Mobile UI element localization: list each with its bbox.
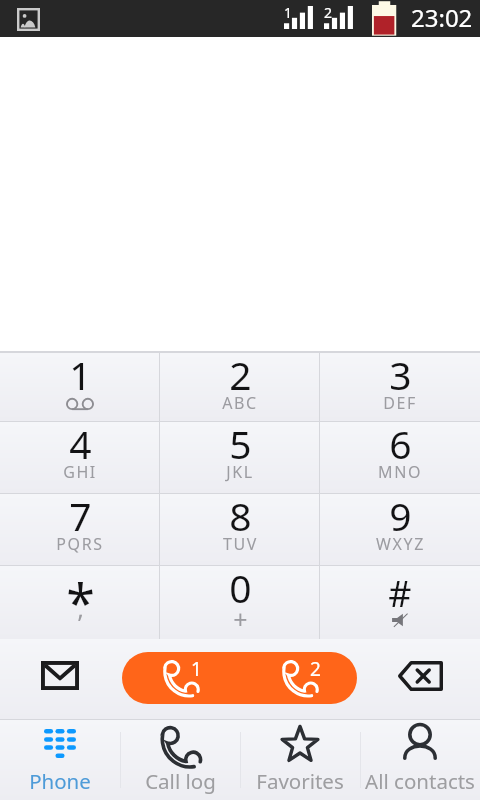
staticText: 7 — [69, 489, 92, 542]
staticText: 23:02 — [411, 1, 473, 34]
staticText: ABC — [222, 392, 258, 414]
button[interactable]: * — [0, 566, 160, 639]
staticText: TUV — [223, 533, 258, 555]
button[interactable]: 9 — [320, 494, 480, 565]
button[interactable]: 6 — [320, 422, 480, 493]
staticText: 3 — [389, 348, 412, 401]
button[interactable]: 0 — [160, 566, 320, 639]
button[interactable]: Call log — [120, 720, 240, 800]
staticText: All contacts — [365, 767, 475, 795]
button[interactable]: Send message — [0, 639, 120, 719]
staticText: Phone — [29, 767, 91, 795]
staticText: * — [66, 566, 95, 637]
staticText: Favorites — [256, 767, 344, 795]
staticText: MNO — [378, 461, 422, 483]
staticText: JKL — [226, 461, 254, 483]
button[interactable]: 3 — [320, 353, 480, 421]
button[interactable]: 8 — [160, 494, 320, 565]
staticText: Call log — [145, 767, 216, 795]
staticText: WXYZ — [376, 533, 425, 555]
staticText: GHI — [63, 461, 97, 483]
staticText: DEF — [383, 392, 417, 414]
staticText: + — [233, 602, 248, 636]
button[interactable]: 1 — [0, 353, 160, 421]
staticText: 5 — [229, 417, 252, 470]
button[interactable]: Favorites — [240, 720, 360, 800]
staticText: , — [77, 591, 84, 625]
button[interactable]: 5 — [160, 422, 320, 493]
button[interactable]: 4 — [0, 422, 160, 493]
staticText: 0 — [229, 561, 252, 614]
staticText: 2 — [229, 348, 252, 401]
staticText: 2 — [310, 656, 321, 682]
staticText: PQRS — [56, 533, 104, 555]
staticText: 1 — [284, 3, 293, 22]
staticText: # — [388, 569, 412, 618]
button[interactable]: # — [320, 566, 480, 639]
staticText: 8 — [229, 489, 252, 542]
staticText: 1 — [69, 348, 92, 401]
staticText: 2 — [324, 3, 333, 22]
staticText: 4 — [69, 417, 92, 470]
button[interactable]: Phone — [0, 720, 120, 800]
button[interactable]: 2 — [160, 353, 320, 421]
staticText: 6 — [389, 417, 412, 470]
button[interactable]: Call — [122, 652, 357, 704]
button[interactable]: 7 — [0, 494, 160, 565]
staticText: 1 — [191, 656, 202, 682]
button[interactable]: Backspace — [360, 639, 480, 719]
staticText: 9 — [389, 489, 412, 542]
button[interactable]: All contacts — [360, 720, 480, 800]
